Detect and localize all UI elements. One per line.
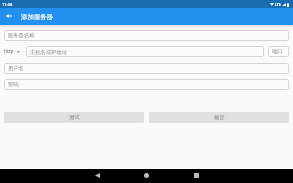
staticText: http bbox=[4, 48, 14, 55]
button[interactable]: http bbox=[4, 46, 20, 57]
button[interactable]: 服务器名称 bbox=[4, 30, 289, 41]
button[interactable]: Recent apps bbox=[185, 170, 207, 181]
button[interactable]: Back bbox=[2, 10, 15, 23]
staticText: 服务器名称 bbox=[8, 32, 35, 39]
staticText: 测试 bbox=[69, 114, 80, 121]
button[interactable]: 确定 bbox=[149, 112, 289, 123]
button[interactable]: Back bbox=[86, 170, 108, 181]
button[interactable]: Home bbox=[135, 170, 157, 181]
staticText: 端口 bbox=[272, 48, 283, 55]
staticText: 密码 bbox=[8, 81, 19, 88]
staticText: 11:08 bbox=[2, 2, 13, 7]
button[interactable]: 端口 bbox=[268, 46, 289, 57]
button[interactable]: 主机名或IP地址 bbox=[26, 46, 264, 57]
button[interactable]: 密码 bbox=[4, 79, 289, 90]
staticText: LTE bbox=[275, 2, 281, 7]
staticText: 确定 bbox=[214, 114, 225, 121]
button[interactable]: 测试 bbox=[4, 112, 144, 123]
button[interactable]: 用户名 bbox=[4, 63, 289, 74]
staticText: 主机名或IP地址 bbox=[30, 48, 67, 55]
staticText: 用户名 bbox=[8, 65, 24, 72]
staticText: 添加服务器 bbox=[21, 13, 53, 21]
